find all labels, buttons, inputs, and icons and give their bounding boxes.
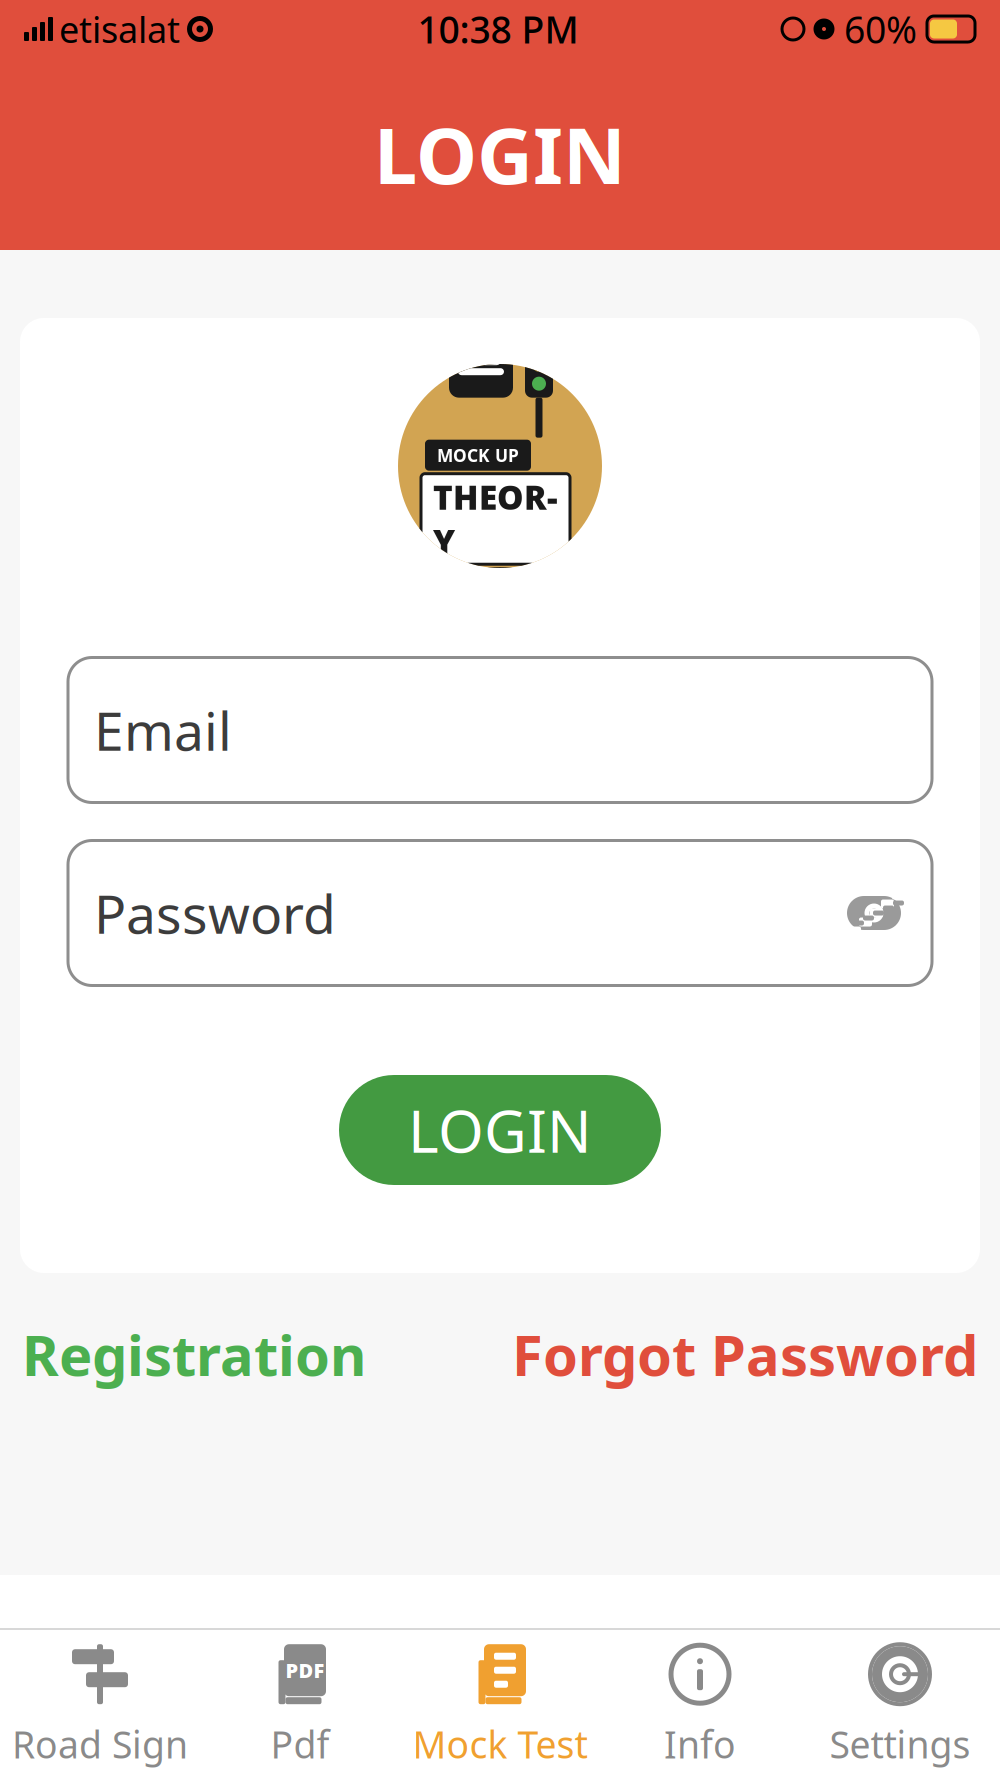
staticText: Settings — [829, 1719, 970, 1769]
button[interactable]: Road Sign — [0, 1627, 200, 1778]
staticText: LOGIN — [374, 103, 626, 205]
button[interactable]: Password — [68, 840, 932, 985]
staticText: 10:38 PM — [417, 4, 578, 54]
button[interactable]: Mock Test — [400, 1627, 600, 1778]
button[interactable]: Email — [68, 657, 932, 802]
button[interactable]: Info — [600, 1627, 800, 1778]
staticText: Info — [664, 1719, 736, 1769]
staticText: Password — [94, 878, 336, 948]
staticText: Forgot Password — [512, 1317, 978, 1391]
staticText: Pdf — [270, 1719, 329, 1769]
staticText: LOGIN — [408, 1091, 592, 1169]
staticText: Mock Test — [412, 1719, 587, 1769]
button[interactable]: Settings — [800, 1627, 1000, 1778]
staticText: Registration — [22, 1317, 366, 1391]
button[interactable]: Registration — [22, 1307, 366, 1401]
staticText: THEORY — [433, 475, 558, 563]
button[interactable]: PDF — [200, 1627, 400, 1778]
button[interactable]: Forgot Password — [512, 1307, 978, 1401]
staticText: MOCK UP — [437, 444, 519, 467]
staticText: 60% — [844, 4, 917, 54]
staticText: Email — [94, 695, 232, 765]
staticText: Road Sign — [12, 1719, 188, 1769]
button[interactable]: LOGIN — [339, 1075, 661, 1185]
staticText: PDF — [285, 1657, 324, 1683]
staticText: etisalat — [59, 5, 180, 53]
